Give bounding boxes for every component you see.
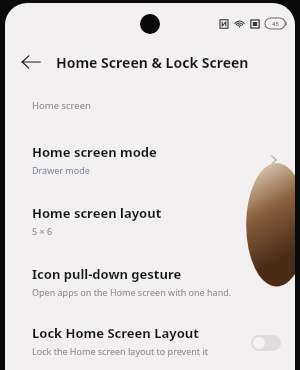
staticText: Lock Home Screen Layout	[32, 324, 199, 342]
staticText: 5 × 6	[32, 225, 53, 237]
staticText: Home screen mode	[32, 143, 157, 161]
staticText: Icon pull-down gesture	[32, 265, 182, 283]
staticText: Home screen layout	[32, 204, 162, 222]
staticText: 45	[272, 20, 279, 28]
button[interactable]: Home screen mode	[5, 134, 295, 185]
button[interactable]: Lock Home Screen Layout toggle	[251, 335, 281, 351]
button[interactable]: Lock Home Screen Layout	[5, 315, 295, 370]
button[interactable]: Home screen layout	[5, 195, 295, 246]
button[interactable]: Back	[18, 49, 44, 75]
staticText: Drawer mode	[32, 164, 90, 176]
staticText: Home Screen & Lock Screen	[56, 53, 249, 72]
button[interactable]: Icon pull-down gesture	[5, 256, 295, 307]
staticText: Lock the Home screen layout to prevent i…	[32, 345, 208, 357]
staticText: Open apps on the Home screen with one ha…	[32, 286, 232, 298]
staticText: Home screen	[32, 99, 91, 112]
